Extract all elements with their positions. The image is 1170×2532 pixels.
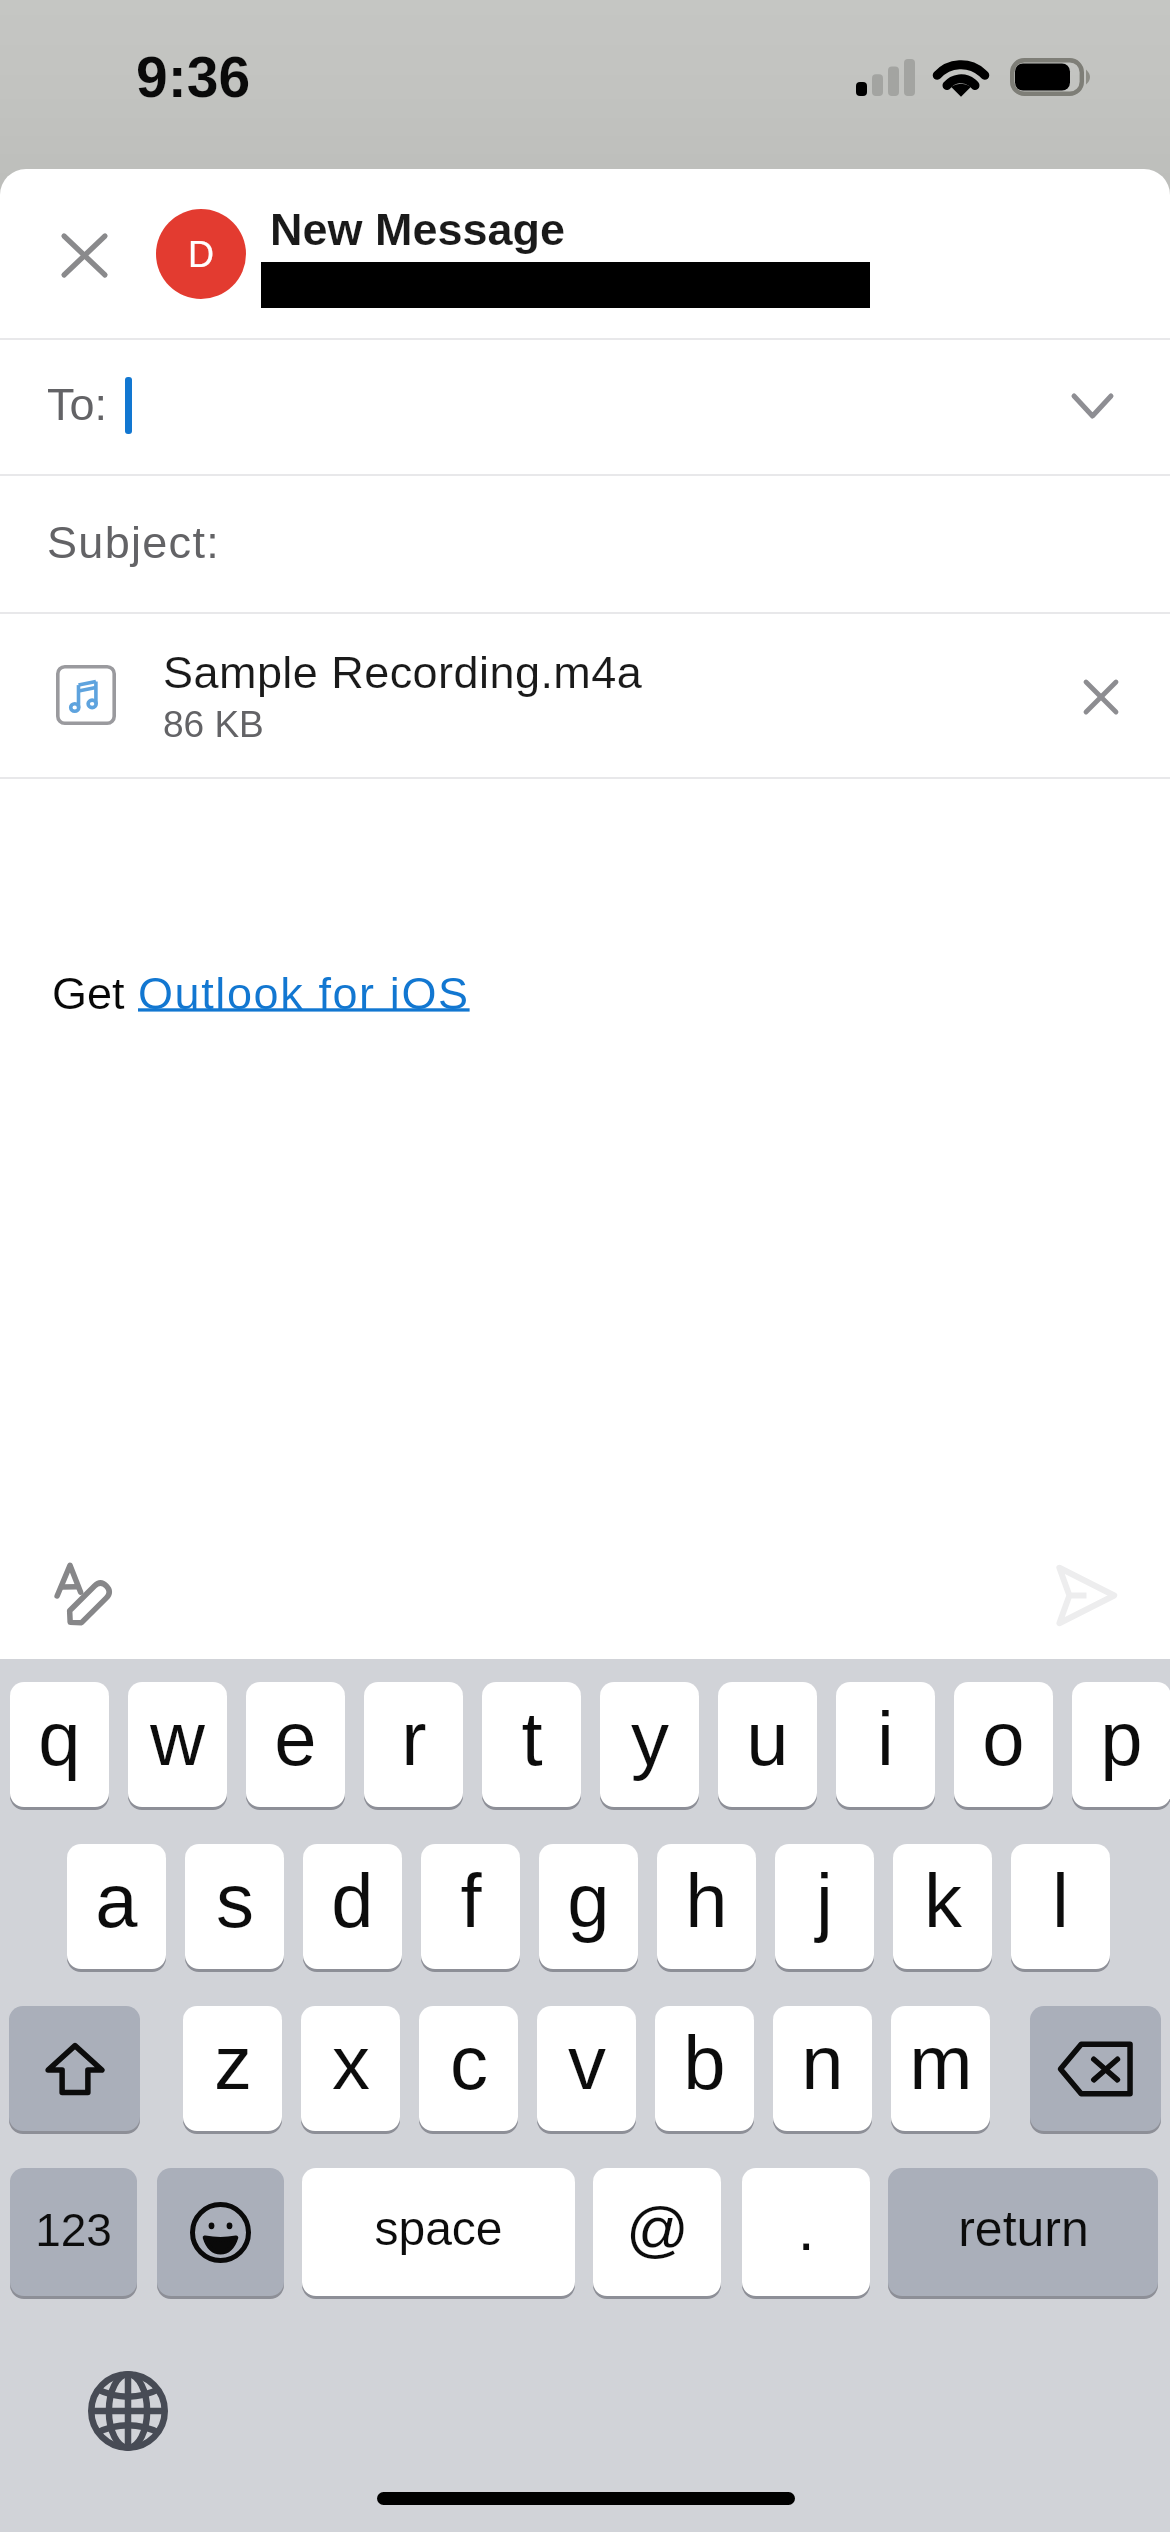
- button[interactable]: c: [419, 2006, 518, 2131]
- button[interactable]: Send: [1038, 1547, 1134, 1643]
- staticText: h: [685, 1858, 728, 1943]
- button[interactable]: f: [421, 1844, 520, 1969]
- staticText: return: [958, 2201, 1089, 2257]
- staticText: s: [216, 1858, 254, 1943]
- button[interactable]: Sample Recording.m4a: [0, 614, 1170, 777]
- staticText: D: [188, 234, 214, 274]
- staticText: y: [631, 1696, 669, 1781]
- button[interactable]: n: [773, 2006, 872, 2131]
- staticText: u: [746, 1696, 789, 1781]
- staticText: v: [568, 2020, 606, 2105]
- button[interactable]: Emoji: [157, 2168, 284, 2296]
- button[interactable]: o: [954, 1682, 1053, 1807]
- button[interactable]: e: [246, 1682, 345, 1807]
- button[interactable]: q: [10, 1682, 109, 1807]
- button[interactable]: g: [539, 1844, 638, 1969]
- staticText: x: [332, 2020, 370, 2105]
- staticText: w: [150, 1696, 205, 1781]
- button[interactable]: Shift: [9, 2006, 140, 2131]
- button[interactable]: m: [891, 2006, 990, 2131]
- button[interactable]: Expand recipients: [1046, 360, 1138, 452]
- button[interactable]: l: [1011, 1844, 1110, 1969]
- staticText: i: [877, 1696, 894, 1781]
- staticText: p: [1100, 1696, 1143, 1781]
- staticText: k: [924, 1858, 962, 1943]
- button[interactable]: s: [185, 1844, 284, 1969]
- staticText: New Message: [270, 204, 566, 254]
- staticText: .: [797, 2194, 815, 2263]
- button[interactable]: j: [775, 1844, 874, 1969]
- button[interactable]: To:: [0, 340, 1170, 474]
- staticText: 86 KB: [163, 704, 264, 745]
- button[interactable]: D: [156, 209, 246, 299]
- button[interactable]: y: [600, 1682, 699, 1807]
- button[interactable]: d: [303, 1844, 402, 1969]
- button[interactable]: b: [655, 2006, 754, 2131]
- button[interactable]: z: [183, 2006, 282, 2131]
- staticText: n: [801, 2020, 844, 2105]
- button[interactable]: t: [482, 1682, 581, 1807]
- button[interactable]: v: [537, 2006, 636, 2131]
- button[interactable]: Close: [40, 211, 128, 299]
- staticText: g: [567, 1858, 610, 1943]
- button[interactable]: return: [888, 2168, 1158, 2296]
- button[interactable]: Outlook for iOS: [138, 968, 470, 1018]
- button[interactable]: w: [128, 1682, 227, 1807]
- staticText: To:: [47, 379, 108, 429]
- button[interactable]: space: [302, 2168, 575, 2296]
- staticText: 123: [35, 2204, 112, 2255]
- button[interactable]: 123: [10, 2168, 137, 2296]
- staticText: @: [626, 2194, 689, 2263]
- staticText: o: [982, 1696, 1025, 1781]
- staticText: Subject:: [47, 517, 220, 567]
- button[interactable]: .: [742, 2168, 870, 2296]
- staticText: r: [401, 1696, 427, 1781]
- staticText: z: [214, 2020, 252, 2105]
- button[interactable]: Remove attachment: [1057, 653, 1145, 741]
- button[interactable]: p: [1072, 1682, 1170, 1807]
- staticText: 9:36: [136, 45, 251, 109]
- staticText: a: [95, 1858, 138, 1943]
- button[interactable]: k: [893, 1844, 992, 1969]
- button[interactable]: h: [657, 1844, 756, 1969]
- button[interactable]: a: [67, 1844, 166, 1969]
- staticText: b: [683, 2020, 726, 2105]
- button[interactable]: Change keyboard: [78, 2361, 178, 2461]
- staticText: Sample Recording.m4a: [163, 647, 643, 697]
- staticText: c: [450, 2020, 488, 2105]
- staticText: m: [909, 2020, 973, 2105]
- staticText: Get: [52, 968, 138, 1018]
- staticText: t: [521, 1696, 543, 1781]
- button[interactable]: @: [593, 2168, 721, 2296]
- button[interactable]: Formatting options: [34, 1546, 134, 1646]
- staticText: f: [460, 1858, 482, 1943]
- button[interactable]: x: [301, 2006, 400, 2131]
- button[interactable]: Backspace: [1030, 2006, 1161, 2131]
- staticText: j: [816, 1858, 833, 1943]
- button[interactable]: i: [836, 1682, 935, 1807]
- button[interactable]: r: [364, 1682, 463, 1807]
- staticText: space: [374, 2202, 503, 2256]
- staticText: l: [1052, 1858, 1069, 1943]
- staticText: e: [274, 1696, 317, 1781]
- button[interactable]: Subject:: [0, 476, 1170, 612]
- button[interactable]: u: [718, 1682, 817, 1807]
- staticText: d: [331, 1858, 374, 1943]
- staticText: q: [38, 1696, 81, 1781]
